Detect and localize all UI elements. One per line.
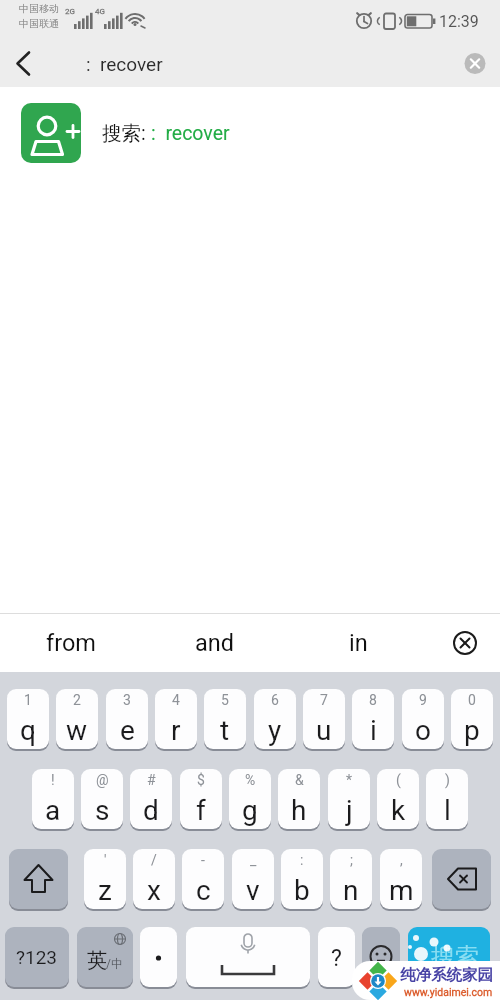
staticText: 0	[468, 692, 476, 708]
staticText: r	[171, 714, 181, 747]
button[interactable]: )	[426, 769, 468, 829]
staticText: p	[464, 714, 480, 747]
staticText: and	[195, 629, 235, 657]
button[interactable]: !	[32, 769, 74, 829]
staticText: 6	[271, 692, 279, 708]
staticText: 12:39	[439, 12, 479, 31]
button[interactable]: -	[182, 849, 224, 909]
staticText: ?	[331, 945, 342, 972]
staticText: 中国移动	[19, 2, 59, 15]
staticText: :	[300, 852, 304, 868]
staticText: 搜索	[431, 942, 479, 972]
staticText: @	[96, 772, 109, 788]
button[interactable]: (	[377, 769, 419, 829]
button[interactable]: :	[281, 849, 323, 909]
button[interactable]	[362, 927, 400, 987]
staticText: : recover	[86, 53, 163, 75]
staticText: 2	[73, 692, 81, 708]
button[interactable]: 1	[7, 689, 49, 749]
button[interactable]: in	[318, 613, 398, 672]
button[interactable]: 7	[303, 689, 345, 749]
staticText: 3	[123, 692, 131, 708]
button[interactable]: 0	[451, 689, 493, 749]
staticText: q	[20, 714, 36, 747]
button[interactable]: *	[328, 769, 370, 829]
button[interactable]: /	[133, 849, 175, 909]
staticText: %	[245, 772, 256, 788]
staticText: 纯净系统家园	[400, 965, 493, 985]
staticText: 搜索:	[102, 121, 146, 146]
button[interactable]: %	[229, 769, 271, 829]
staticText: /	[151, 852, 157, 868]
button[interactable]	[448, 626, 482, 660]
staticText: s	[95, 794, 110, 827]
button[interactable]: ?	[318, 927, 355, 987]
button[interactable]: '	[84, 849, 126, 909]
button[interactable]: 搜索:	[0, 87, 500, 179]
button[interactable]: and	[175, 613, 255, 672]
staticText: www.yidaimei.com	[404, 986, 493, 998]
button[interactable]	[140, 927, 177, 987]
staticText: b	[294, 874, 310, 907]
staticText: ?123	[16, 946, 58, 968]
button[interactable]: 8	[352, 689, 394, 749]
staticText: 9	[419, 692, 427, 708]
button[interactable]: 英	[77, 927, 133, 987]
staticText: k	[391, 794, 406, 827]
button[interactable]: $	[180, 769, 222, 829]
staticText: ;	[350, 852, 353, 868]
button[interactable]: 9	[402, 689, 444, 749]
staticText: o	[415, 714, 431, 747]
button[interactable]: &	[278, 769, 320, 829]
button[interactable]	[9, 849, 68, 909]
staticText: 7	[320, 692, 328, 708]
staticText: *	[346, 772, 353, 788]
button[interactable]: 6	[254, 689, 296, 749]
button[interactable]	[432, 849, 491, 909]
button[interactable]: ;	[330, 849, 372, 909]
staticText: '	[104, 852, 107, 868]
staticText: )	[445, 772, 450, 788]
staticText: 2G	[65, 7, 75, 16]
staticText: d	[143, 794, 159, 827]
staticText: 4G	[95, 7, 105, 16]
staticText: _	[250, 852, 257, 868]
button[interactable]: ,	[380, 849, 422, 909]
button[interactable]: 3	[106, 689, 148, 749]
button[interactable]	[186, 927, 310, 987]
staticText: #	[147, 772, 156, 788]
button[interactable]: #	[130, 769, 172, 829]
staticText: w	[66, 714, 88, 747]
staticText: from	[46, 629, 96, 657]
button[interactable]: 2	[56, 689, 98, 749]
button[interactable]: 5	[204, 689, 246, 749]
staticText: g	[242, 794, 258, 827]
staticText: $	[197, 772, 205, 788]
staticText: in	[349, 629, 368, 657]
button[interactable]	[460, 49, 490, 79]
staticText: m	[389, 874, 414, 907]
button[interactable]: ?123	[5, 927, 69, 987]
staticText: y	[268, 714, 282, 747]
staticText: t	[220, 714, 230, 747]
staticText: i	[370, 714, 377, 747]
staticText: a	[45, 794, 61, 827]
staticText: 5	[221, 692, 229, 708]
staticText: ,	[400, 852, 403, 868]
button[interactable]: @	[81, 769, 123, 829]
button[interactable]: 4	[155, 689, 197, 749]
button[interactable]: 搜索	[408, 927, 490, 987]
staticText: !	[51, 772, 55, 788]
staticText: /中	[106, 956, 123, 971]
staticText: c	[196, 874, 211, 907]
staticText: : recover	[151, 122, 230, 145]
button[interactable]	[6, 45, 46, 83]
staticText: v	[246, 874, 260, 907]
staticText: &	[295, 772, 304, 788]
staticText: f	[196, 794, 206, 827]
staticText: 中国联通	[19, 17, 59, 30]
staticText: 1	[24, 692, 32, 708]
button[interactable]: _	[232, 849, 274, 909]
staticText: h	[291, 794, 307, 827]
button[interactable]: from	[31, 613, 111, 672]
